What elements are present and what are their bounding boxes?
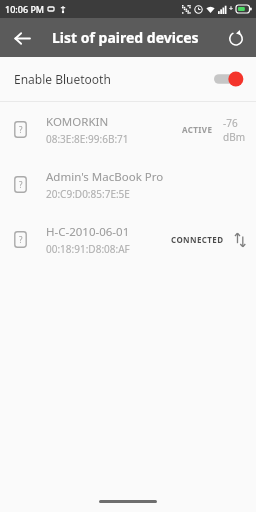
other: Data transfer [233,232,247,248]
staticText: List of paired devices [52,28,199,47]
staticText: -76 [223,116,238,130]
button[interactable]: ? [0,157,256,212]
staticText: ? [19,179,23,190]
staticText: 20:C9:D0:85:7E:5E [46,187,130,201]
staticText: + [229,4,234,14]
button[interactable]: ? [0,102,256,157]
button[interactable]: Refresh [219,21,253,55]
button[interactable]: Enable Bluetooth [0,57,256,101]
staticText: dBm [223,130,245,144]
staticText: ? [19,234,23,245]
staticText: 08:3E:8E:99:6B:71 [46,132,129,146]
staticText: H-C-2010-06-01 [46,224,130,240]
button[interactable]: Back [5,21,39,55]
staticText: KOMORKIN [46,114,109,130]
staticText: 10:06 PM [5,3,45,15]
button[interactable]: ? [0,212,256,267]
staticText: 00:18:91:D8:08:AF [46,242,130,256]
staticText: Admin's MacBook Pro [46,169,164,185]
staticText: CONNECTED [171,234,224,245]
staticText: ACTIVE [182,124,213,135]
staticText: Enable Bluetooth [14,71,111,87]
staticText: ? [19,124,23,135]
